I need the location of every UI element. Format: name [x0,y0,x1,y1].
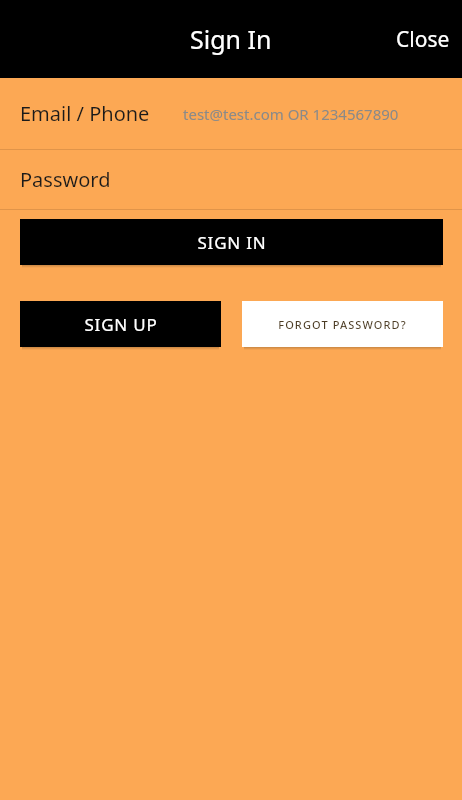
staticText: SIGN IN [197,231,267,254]
staticText: Email / Phone [20,100,150,127]
button[interactable]: SIGN IN [20,219,443,265]
staticText: SIGN UP [84,313,158,336]
staticText: test@test.com OR 1234567890 [183,104,399,124]
button[interactable]: Close [384,15,462,64]
button[interactable]: Password [0,150,462,209]
staticText: Close [396,25,450,54]
button[interactable]: FORGOT PASSWORD? [242,301,443,347]
button[interactable]: SIGN UP [20,301,221,347]
staticText: Sign In [190,22,272,56]
staticText: Password [20,166,111,193]
button[interactable]: Email / Phone [0,78,462,149]
staticText: FORGOT PASSWORD? [278,317,407,332]
